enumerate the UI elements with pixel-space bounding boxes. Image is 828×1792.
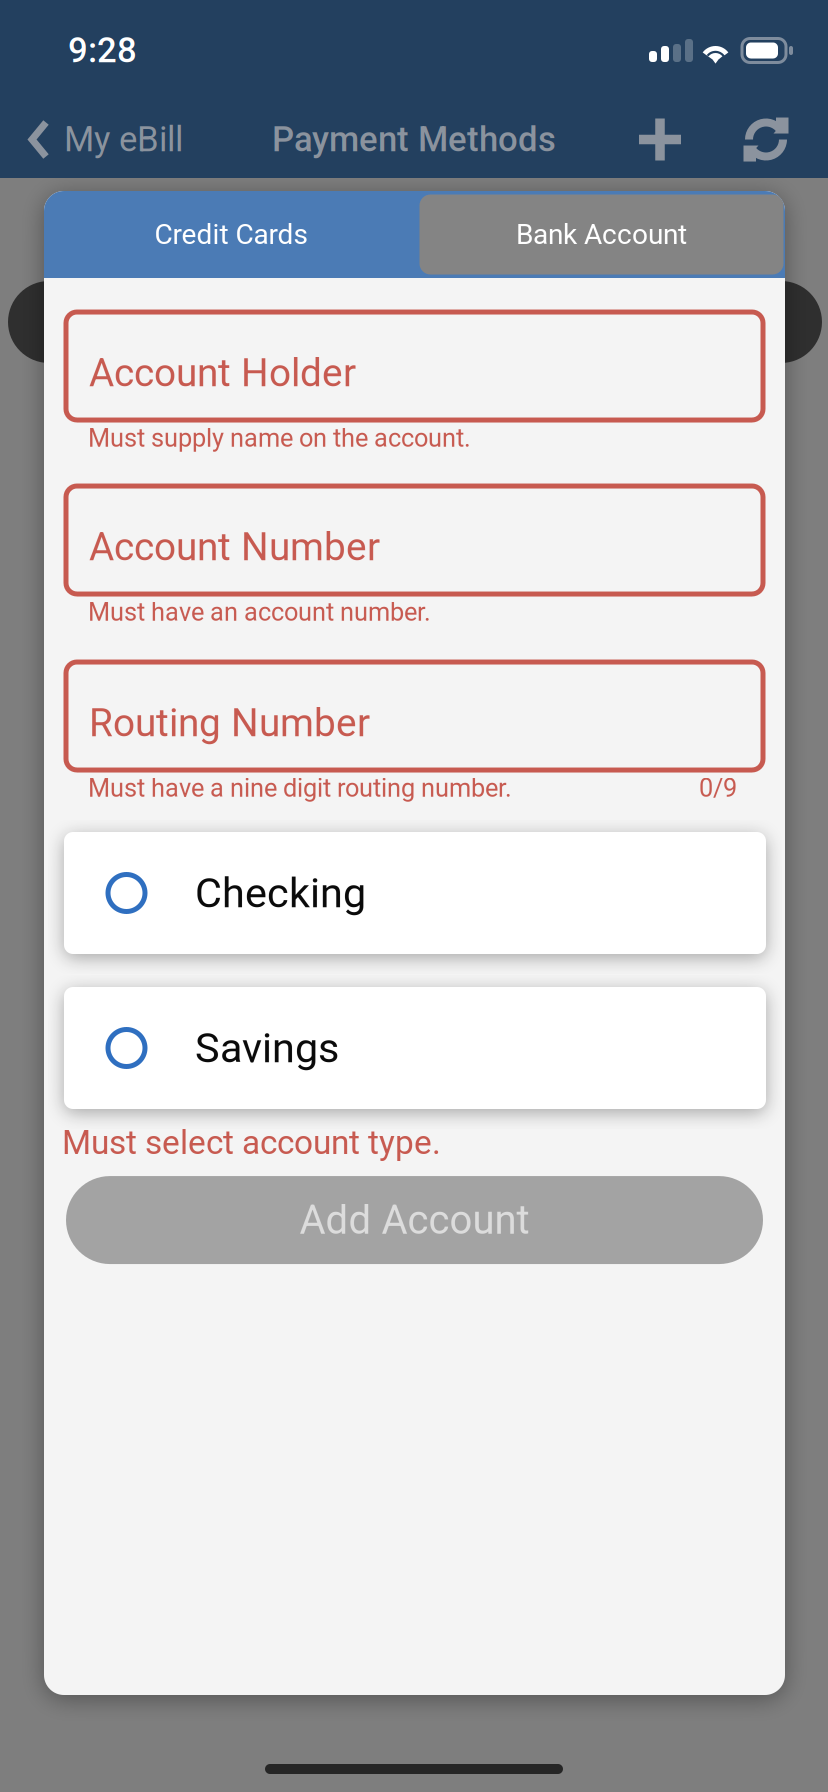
button[interactable]: Account Number xyxy=(66,486,763,594)
staticText: Must supply name on the account. xyxy=(88,423,471,453)
staticText: Account Holder xyxy=(89,350,356,396)
staticText: Checking xyxy=(195,869,366,917)
button[interactable]: Bank Account xyxy=(418,191,785,278)
staticText: My eBill xyxy=(64,119,183,160)
button[interactable]: Routing Number xyxy=(66,662,763,770)
staticText: Add Account xyxy=(299,1197,529,1243)
staticText: Payment Methods xyxy=(272,119,556,160)
staticText: 0/9 xyxy=(699,773,737,803)
button[interactable]: Savings xyxy=(64,987,766,1109)
button[interactable]: Add Account xyxy=(66,1176,763,1264)
staticText: Must select account type. xyxy=(62,1123,441,1162)
button[interactable]: My eBill xyxy=(0,97,199,181)
staticText: Bank Account xyxy=(516,218,687,251)
staticText: Routing Number xyxy=(89,700,370,746)
button[interactable]: Account Holder xyxy=(66,312,763,420)
staticText: 9:28 xyxy=(68,30,137,71)
staticText: Savings xyxy=(195,1024,339,1072)
button[interactable]: Checking xyxy=(64,832,766,954)
staticText: Account Number xyxy=(89,524,380,570)
staticText: Credit Cards xyxy=(154,218,307,251)
staticText: Must have a nine digit routing number. xyxy=(88,773,512,803)
button[interactable]: Refresh xyxy=(726,97,806,181)
button[interactable]: Add payment method xyxy=(618,97,702,181)
staticText: Must have an account number. xyxy=(88,597,431,627)
button[interactable]: Credit Cards xyxy=(44,191,418,278)
